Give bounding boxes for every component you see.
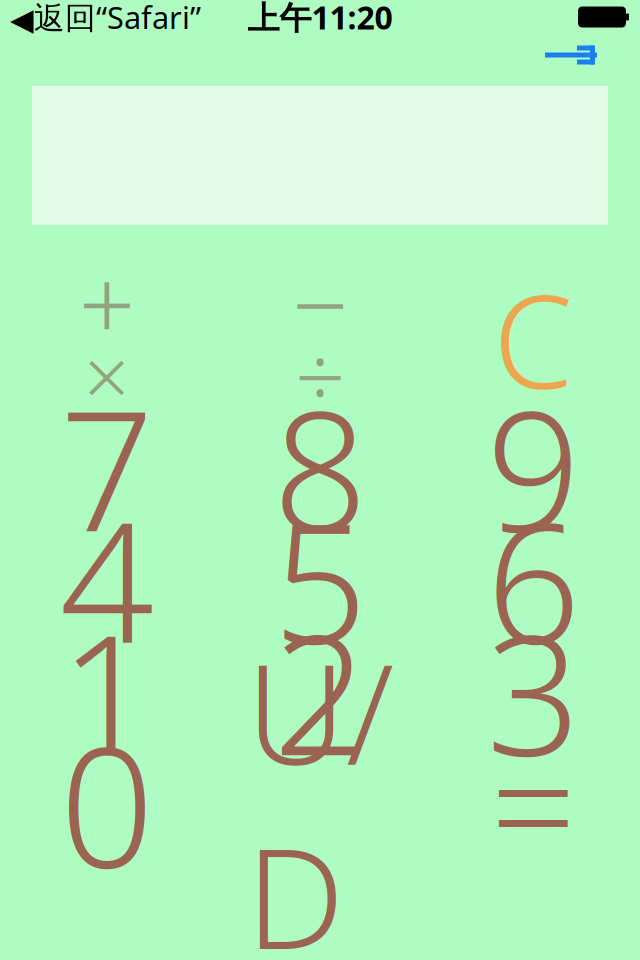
button[interactable]: 9: [427, 411, 640, 523]
button[interactable]: U/D: [213, 747, 427, 859]
button[interactable]: ÷: [213, 339, 427, 411]
staticText: +: [79, 237, 135, 368]
staticText: =: [491, 704, 576, 902]
button[interactable]: 8: [213, 411, 427, 523]
staticText: 上午11:20: [247, 0, 392, 38]
staticText: 2: [273, 581, 367, 801]
button[interactable]: 5: [213, 523, 427, 635]
staticText: 5: [273, 469, 367, 689]
button[interactable]: 2: [213, 635, 427, 747]
button[interactable]: 7: [0, 411, 213, 523]
button[interactable]: 3: [427, 635, 640, 747]
button[interactable]: −: [213, 267, 427, 339]
button[interactable]: 0: [0, 747, 213, 859]
staticText: ×: [84, 322, 130, 428]
staticText: U/D: [246, 619, 394, 960]
staticText: −: [292, 237, 348, 368]
staticText: C: [493, 254, 573, 424]
button[interactable]: =: [427, 747, 640, 859]
button[interactable]: 6: [427, 523, 640, 635]
staticText: 8: [273, 357, 367, 577]
button[interactable]: 1: [0, 635, 213, 747]
button[interactable]: ◀返回“Safari”: [0, 0, 201, 39]
staticText: 4: [60, 469, 154, 689]
button[interactable]: Go: [545, 40, 640, 70]
button[interactable]: C: [427, 267, 640, 411]
staticText: 3: [486, 581, 580, 801]
staticText: 1: [60, 581, 154, 801]
button[interactable]: 4: [0, 523, 213, 635]
button[interactable]: +: [0, 267, 213, 339]
staticText: 0: [60, 693, 154, 913]
staticText: 6: [486, 469, 580, 689]
button[interactable]: ×: [0, 339, 213, 411]
staticText: 7: [60, 357, 154, 577]
staticText: ÷: [295, 317, 345, 433]
staticText: ◀返回“Safari”: [10, 0, 201, 37]
staticText: 9: [486, 357, 580, 577]
